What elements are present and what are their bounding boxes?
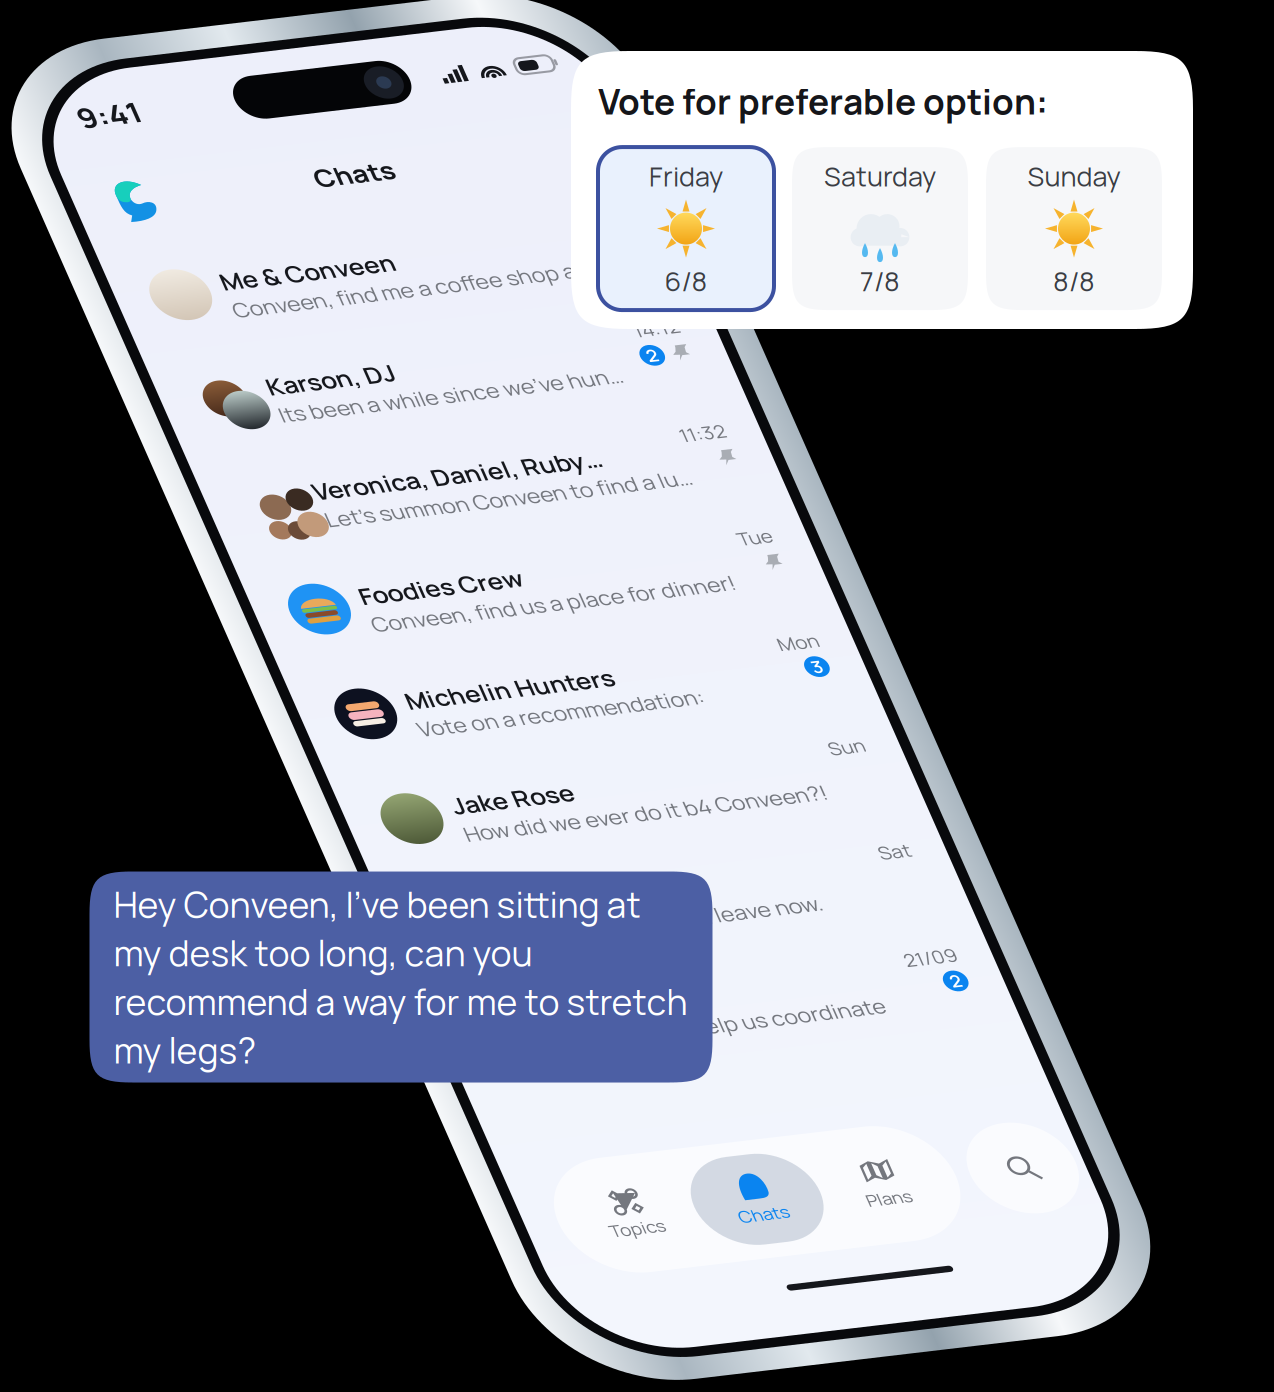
staticText: Jake Rose	[129, 1044, 265, 1084]
staticText: 6/8	[664, 263, 707, 299]
staticText: Sunday	[1027, 158, 1120, 195]
button[interactable]: Me & Conveen	[10, 322, 635, 460]
button[interactable]: Veronica, Daniel, Ruby…	[10, 598, 635, 735]
staticText: Vote on a recommendation:	[129, 946, 449, 980]
staticText: Karson, DJ	[129, 494, 272, 533]
button[interactable]: Saturday	[792, 147, 968, 310]
staticText: 7/8	[860, 263, 900, 299]
staticText: 8/8	[1053, 263, 1095, 299]
staticText: Its been a while since we've hun…	[129, 533, 513, 568]
staticText: Foodies Crew	[129, 769, 312, 808]
staticText: 9:41	[54, 127, 124, 174]
staticText: Michelin Hunters	[129, 907, 362, 946]
staticText: Me & Conveen	[129, 356, 324, 396]
staticText: Chats	[278, 239, 368, 281]
button[interactable]: Foodies Crew	[10, 735, 635, 873]
staticText: Mon	[552, 895, 597, 926]
staticText: How did we ever do it b4 Conveen?!	[129, 1083, 535, 1118]
staticText: Let's summon Conveen to find a lun…	[129, 671, 542, 705]
staticText: Veronica, Daniel, Ruby…	[129, 632, 452, 671]
staticText: Hey Conveen, I’ve been sitting at my des…	[113, 880, 687, 1074]
staticText: Conveen, find me a coffee shop a…	[129, 395, 528, 430]
button[interactable]: Jake Rose	[10, 1010, 635, 1148]
staticText: Saturday	[824, 158, 936, 195]
button[interactable]: Life Coaches	[10, 1286, 635, 1392]
button[interactable]: Emma Wills	[10, 1148, 635, 1286]
staticText: 2	[577, 1341, 590, 1370]
button[interactable]: Sunday	[986, 147, 1162, 310]
staticText: 14:12	[546, 482, 597, 513]
button[interactable]: Michelin Hunters	[10, 873, 635, 1010]
staticText: Conveen, find us a place for dinner!	[129, 808, 536, 843]
button[interactable]: Karson, DJ	[10, 460, 635, 598]
staticText: 21/09	[538, 1308, 597, 1339]
button[interactable]: Friday	[598, 147, 774, 310]
staticText: Friday	[649, 158, 723, 195]
staticText: Vote for preferable option:	[598, 77, 1048, 125]
